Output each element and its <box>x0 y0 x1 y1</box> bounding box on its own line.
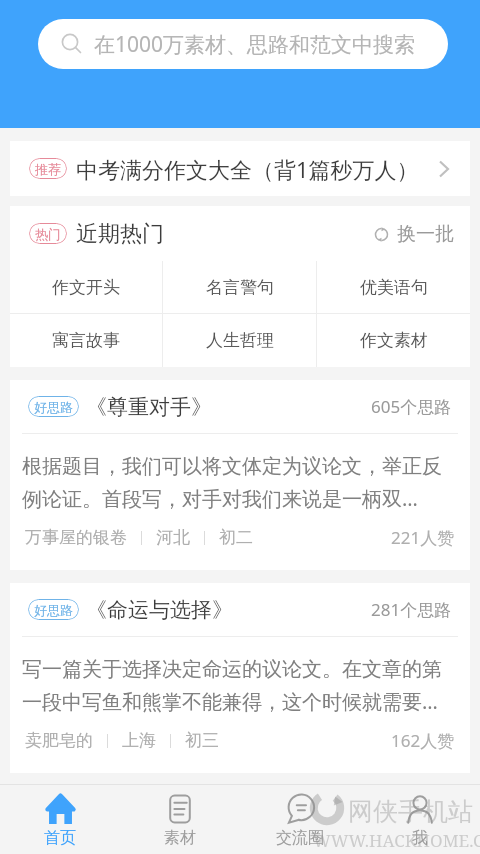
staticText: WWW.HACKHOME.COM <box>313 829 480 852</box>
button[interactable]: 人生哲理 <box>163 314 316 367</box>
staticText: 根据题目，我们可以将文体定为议论文，举正反例论证。首段写，对手对我们来说是一柄双… <box>22 454 458 512</box>
staticText: 作文开头 <box>52 277 120 298</box>
button[interactable]: 好思路 <box>10 583 470 773</box>
button[interactable]: 首页 <box>0 785 120 854</box>
staticText: 推荐 <box>35 161 61 177</box>
button[interactable]: 作文开头 <box>10 261 162 313</box>
staticText: 《命运与选择》 <box>86 597 233 623</box>
button[interactable]: 名言警句 <box>163 261 316 313</box>
staticText: 在1000万素材、思路和范文中搜索 <box>94 30 416 59</box>
button[interactable]: 素材 <box>120 785 240 854</box>
staticText: 近期热门 <box>76 220 164 248</box>
staticText: 人生哲理 <box>206 330 274 351</box>
staticText: 好思路 <box>34 399 73 415</box>
staticText: 卖肥皂的 <box>25 730 93 751</box>
staticText: 好思路 <box>34 602 73 618</box>
staticText: 作文素材 <box>360 330 428 351</box>
staticText: 网侠手机站 <box>348 796 473 827</box>
staticText: 281个思路 <box>371 598 452 621</box>
staticText: 热门 <box>35 226 61 242</box>
button[interactable]: 在1000万素材、思路和范文中搜索 <box>38 19 448 69</box>
button[interactable]: 作文素材 <box>317 314 470 367</box>
staticText: 我 <box>412 828 428 848</box>
button[interactable]: 交流圈 <box>240 785 360 854</box>
staticText: 初三 <box>185 730 219 751</box>
staticText: 交流圈 <box>276 828 324 848</box>
button[interactable]: 优美语句 <box>317 261 470 313</box>
staticText: 上海 <box>122 730 156 751</box>
staticText: 605个思路 <box>371 395 452 418</box>
button[interactable]: 我 <box>360 785 480 854</box>
staticText: 写一篇关于选择决定命运的议论文。在文章的第一段中写鱼和熊掌不能兼得，这个时候就需… <box>22 657 458 715</box>
staticText: 寓言故事 <box>52 330 120 351</box>
staticText: 221人赞 <box>391 526 455 549</box>
staticText: 《尊重对手》 <box>86 394 212 420</box>
button[interactable]: 寓言故事 <box>10 314 162 367</box>
staticText: 素材 <box>164 828 196 848</box>
staticText: 换一批 <box>397 222 454 246</box>
staticText: 初二 <box>219 527 253 548</box>
staticText: 中考满分作文大全（背1篇秒万人） <box>76 154 419 184</box>
button[interactable]: 换一批 <box>374 222 454 246</box>
button[interactable]: 好思路 <box>10 380 470 570</box>
staticText: 河北 <box>156 527 190 548</box>
staticText: 万事屋的银卷 <box>25 527 127 548</box>
button[interactable]: 推荐 <box>10 141 470 196</box>
staticText: 162人赞 <box>391 729 455 752</box>
staticText: 优美语句 <box>360 277 428 298</box>
staticText: 首页 <box>44 828 76 848</box>
staticText: 名言警句 <box>206 277 274 298</box>
